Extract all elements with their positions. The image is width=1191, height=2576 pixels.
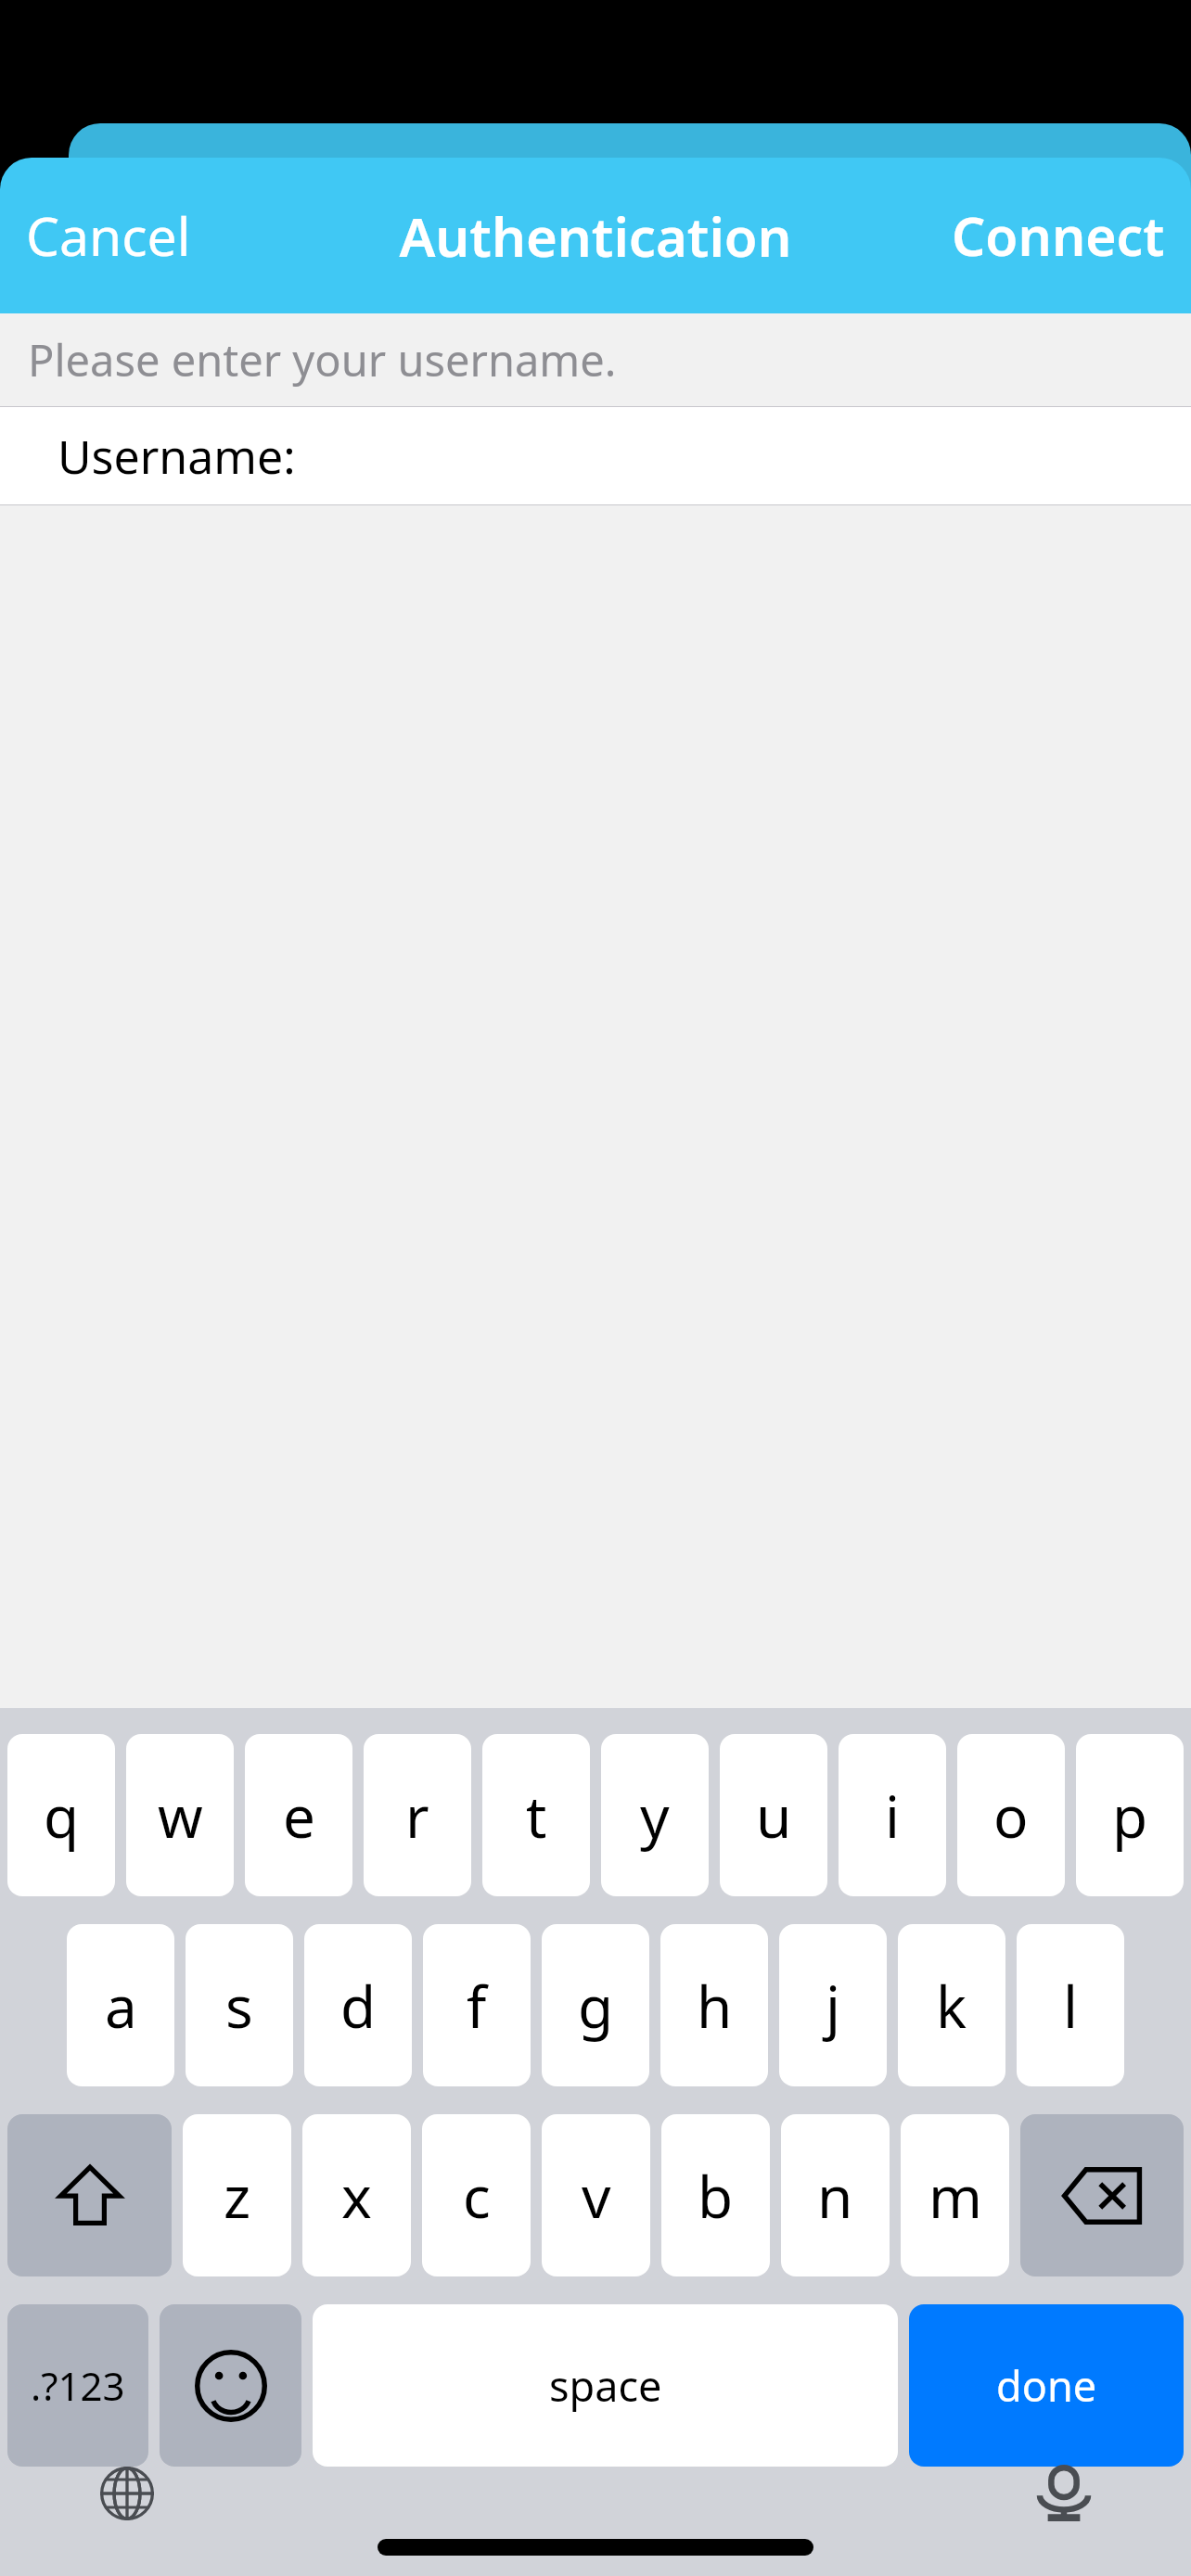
button[interactable]: Cancel — [26, 158, 365, 313]
button[interactable]: u — [720, 1734, 827, 1896]
staticText: x — [341, 2157, 372, 2235]
staticText: space — [549, 2357, 662, 2414]
staticText: v — [582, 2157, 611, 2235]
button[interactable]: x — [302, 2114, 411, 2276]
staticText: k — [936, 1967, 967, 2045]
staticText: j — [826, 1967, 840, 2045]
button[interactable]: e — [245, 1734, 352, 1896]
staticText: p — [1112, 1777, 1148, 1855]
staticText: Connect — [952, 199, 1165, 272]
staticText: r — [405, 1777, 429, 1855]
button[interactable]: v — [542, 2114, 650, 2276]
staticText: n — [817, 2157, 853, 2235]
staticText: o — [993, 1777, 1029, 1855]
staticText: g — [578, 1967, 614, 2045]
button[interactable]: Backspace — [1020, 2114, 1184, 2276]
staticText: .?123 — [31, 2359, 125, 2412]
staticText: q — [44, 1777, 80, 1855]
button[interactable]: Connect — [825, 158, 1165, 313]
staticText: Username: — [58, 425, 296, 488]
staticText: z — [224, 2157, 251, 2235]
staticText: e — [283, 1777, 315, 1855]
button[interactable]: j — [779, 1924, 887, 2086]
staticText: w — [158, 1777, 203, 1855]
button[interactable]: .?123 — [7, 2304, 148, 2467]
staticText: u — [756, 1777, 792, 1855]
button[interactable]: a — [67, 1924, 174, 2086]
staticText: l — [1063, 1967, 1078, 2045]
button[interactable]: t — [482, 1734, 590, 1896]
button[interactable]: h — [660, 1924, 768, 2086]
button[interactable]: y — [601, 1734, 709, 1896]
staticText: a — [105, 1967, 137, 2045]
button[interactable]: z — [183, 2114, 291, 2276]
staticText: c — [463, 2157, 491, 2235]
staticText: d — [340, 1967, 377, 2045]
button[interactable]: n — [781, 2114, 890, 2276]
staticText: y — [640, 1777, 670, 1855]
staticText: Cancel — [26, 199, 191, 272]
button[interactable]: b — [661, 2114, 770, 2276]
button[interactable]: l — [1017, 1924, 1124, 2086]
button[interactable]: space — [313, 2304, 898, 2467]
button[interactable]: p — [1076, 1734, 1184, 1896]
staticText: done — [996, 2357, 1097, 2414]
button[interactable]: Emoji — [160, 2304, 301, 2467]
button[interactable]: o — [957, 1734, 1065, 1896]
button[interactable]: s — [186, 1924, 293, 2086]
button[interactable]: c — [422, 2114, 531, 2276]
staticText: t — [526, 1777, 547, 1855]
button[interactable]: k — [898, 1924, 1005, 2086]
staticText: Authentication — [399, 199, 792, 273]
button[interactable]: Username: — [0, 407, 1191, 504]
button[interactable]: r — [364, 1734, 471, 1896]
staticText: b — [698, 2157, 734, 2235]
staticText: f — [467, 1967, 487, 2045]
button[interactable]: w — [126, 1734, 234, 1896]
button[interactable]: Dictation — [1013, 2467, 1115, 2520]
button[interactable]: Shift — [7, 2114, 172, 2276]
button[interactable]: done — [909, 2304, 1184, 2467]
button[interactable]: m — [901, 2114, 1009, 2276]
staticText: m — [928, 2157, 982, 2235]
button[interactable]: f — [423, 1924, 531, 2086]
button[interactable]: q — [7, 1734, 115, 1896]
staticText: Please enter your username. — [28, 330, 617, 389]
staticText: s — [225, 1967, 253, 2045]
button[interactable]: i — [839, 1734, 946, 1896]
button[interactable]: d — [304, 1924, 412, 2086]
staticText: i — [885, 1777, 900, 1855]
button[interactable]: Change keyboard language — [76, 2467, 178, 2520]
button[interactable]: g — [542, 1924, 649, 2086]
staticText: h — [697, 1967, 733, 2045]
